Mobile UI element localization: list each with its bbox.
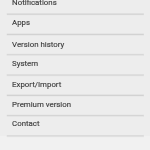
staticText: System <box>12 59 39 68</box>
staticText: Version history <box>12 40 65 49</box>
button[interactable]: Version history <box>0 34 150 54</box>
button[interactable]: Contact <box>0 115 150 135</box>
staticText: Export/Import <box>12 80 62 89</box>
button[interactable]: Notifications <box>0 0 150 13</box>
staticText: Notifications <box>12 0 57 7</box>
staticText: Apps <box>12 18 30 27</box>
staticText: Notifications <box>12 0 57 7</box>
button[interactable]: Apps <box>0 14 150 34</box>
staticText: Premium version <box>12 100 71 109</box>
staticText: Premium version <box>12 100 71 109</box>
staticText: Version history <box>12 40 65 49</box>
button[interactable]: Premium version <box>0 95 150 115</box>
staticText: System <box>12 59 39 68</box>
staticText: Contact <box>12 119 40 128</box>
staticText: Export/Import <box>12 80 62 89</box>
staticText: Contact <box>12 119 40 128</box>
button[interactable]: Export/Import <box>0 75 150 95</box>
button[interactable]: System <box>0 54 150 74</box>
staticText: Apps <box>12 18 30 27</box>
